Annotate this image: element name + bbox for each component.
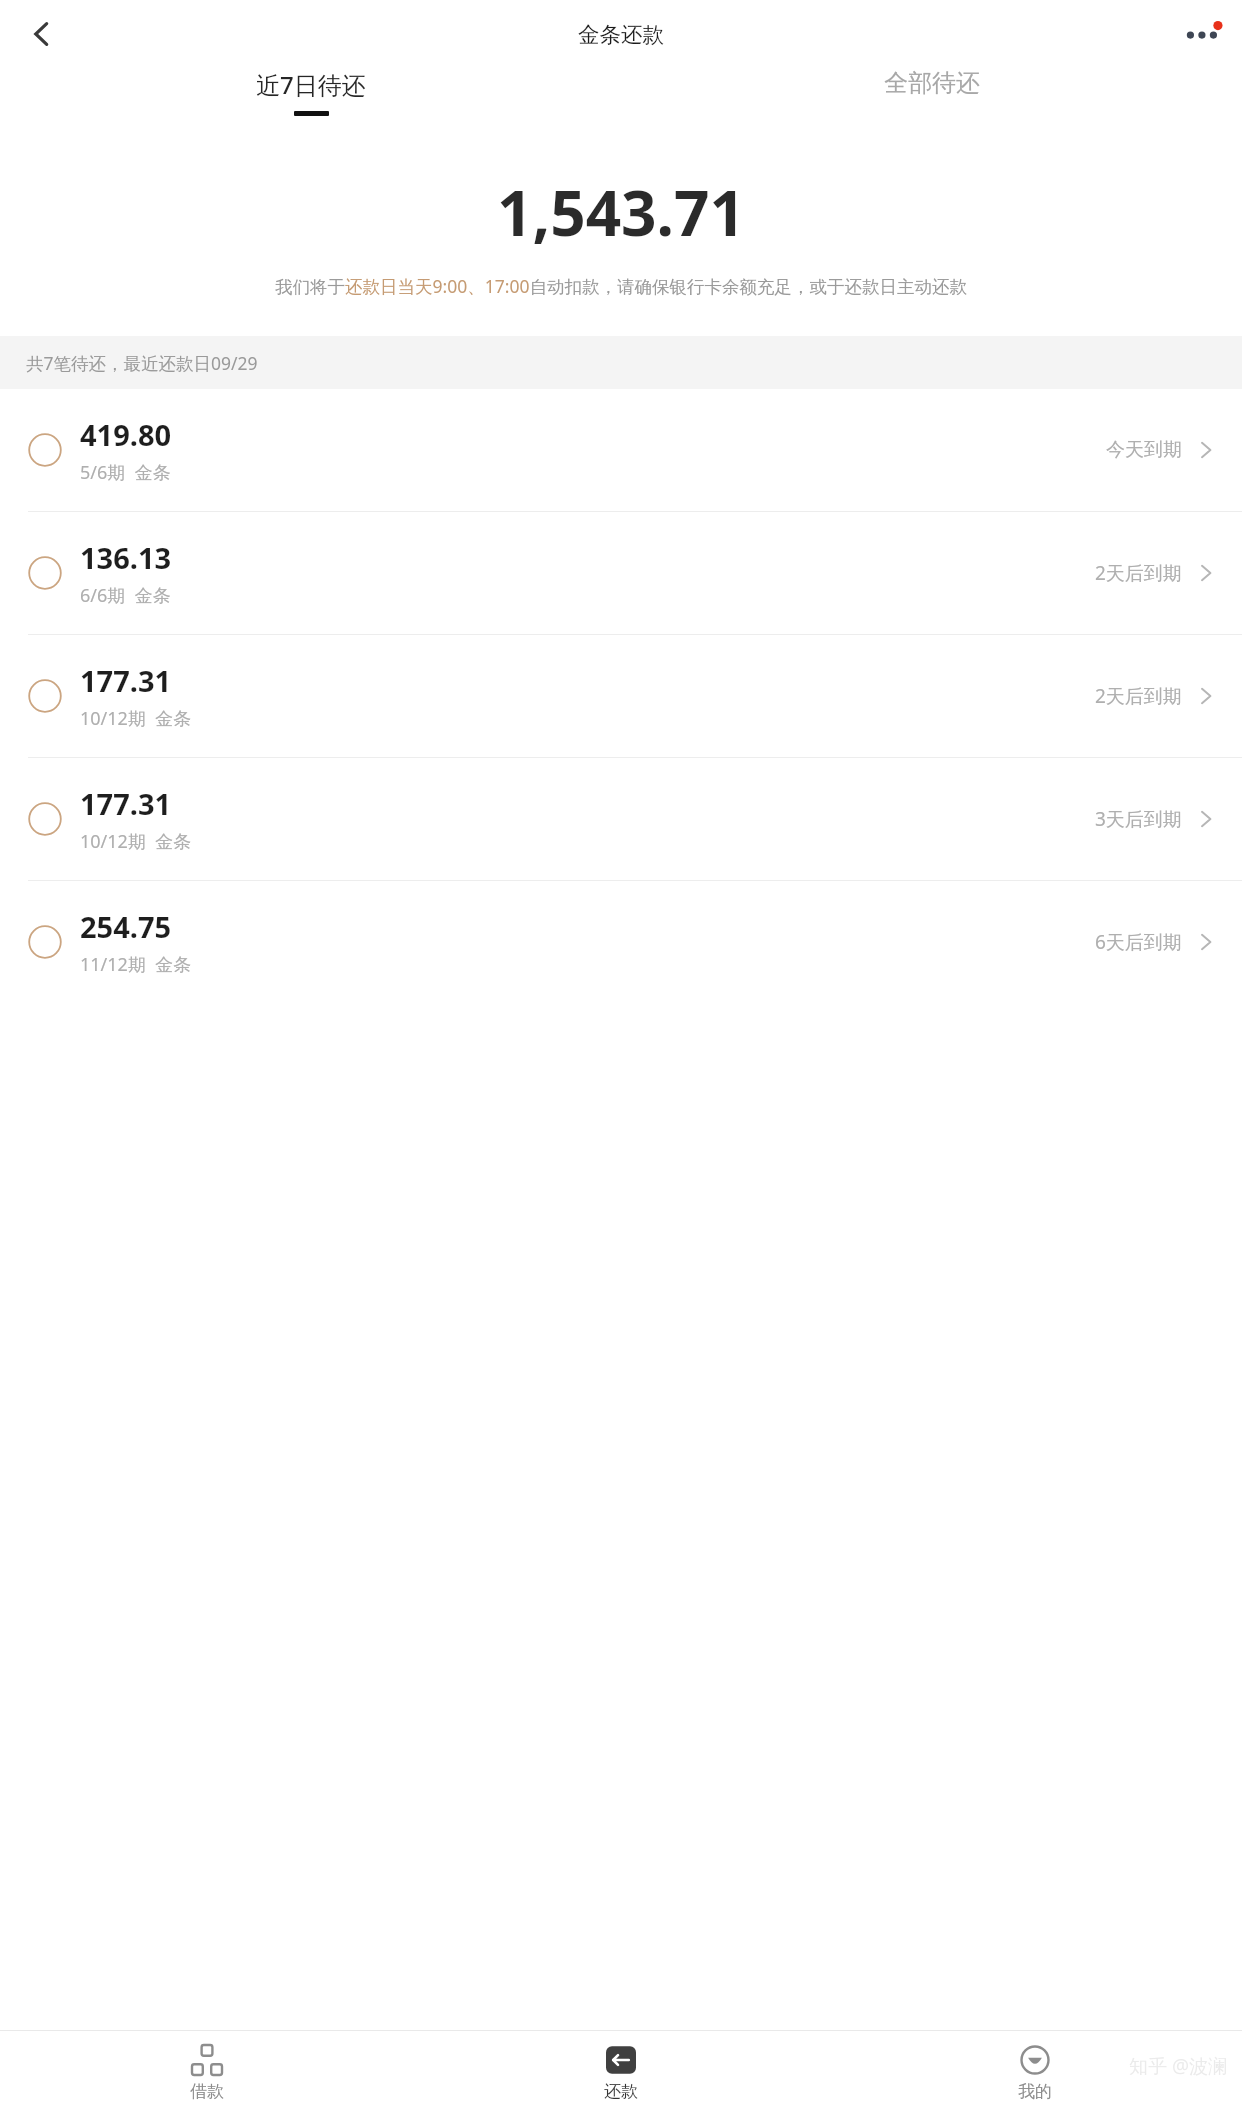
staticText: 借款 <box>190 2081 224 2102</box>
staticText: 177.31 <box>80 784 172 823</box>
staticText: 6/6期 金条 <box>80 583 171 608</box>
button[interactable]: 还款 <box>414 2045 828 2102</box>
staticText: 2天后到期 <box>1095 683 1182 709</box>
staticText: 还款 <box>604 2081 638 2102</box>
button[interactable]: 254.75 <box>0 881 1242 1003</box>
staticText: 11/12期 金条 <box>80 952 192 977</box>
staticText: 今天到期 <box>1106 438 1182 462</box>
staticText: 5/6期 金条 <box>80 460 171 485</box>
staticText: 共7笔待还，最近还款日09/29 <box>26 351 258 375</box>
staticText: 177.31 <box>80 661 172 700</box>
button[interactable]: 借款 <box>0 2045 414 2102</box>
staticText: 3天后到期 <box>1095 806 1182 832</box>
staticText: 1,543.71 <box>0 170 1242 254</box>
button[interactable]: Back <box>10 2 74 66</box>
staticText: 10/12期 金条 <box>80 829 192 854</box>
staticText: 近7日待还 <box>256 68 366 101</box>
button[interactable]: 136.13 <box>0 512 1242 634</box>
staticText: 2天后到期 <box>1095 560 1182 586</box>
staticText: 254.75 <box>80 907 172 946</box>
button[interactable]: 177.31 <box>0 635 1242 757</box>
button[interactable]: 177.31 <box>0 758 1242 880</box>
staticText: 419.80 <box>80 415 172 454</box>
button[interactable]: 近7日待还 <box>0 68 621 116</box>
button[interactable]: 全部待还 <box>621 68 1242 113</box>
staticText: 我的 <box>1018 2081 1052 2102</box>
staticText: 金条还款 <box>578 21 664 48</box>
staticText: 知乎 @波澜 <box>1129 2053 1228 2079</box>
button[interactable]: 419.80 <box>0 389 1242 511</box>
staticText: 我们将于还款日当天9:00、17:00自动扣款，请确保银行卡余额充足，或于还款日… <box>62 274 1180 298</box>
button[interactable]: More options <box>1172 2 1236 66</box>
staticText: 136.13 <box>80 538 172 577</box>
staticText: 10/12期 金条 <box>80 706 192 731</box>
button[interactable]: 我的 <box>828 2045 1242 2102</box>
staticText: 6天后到期 <box>1095 929 1182 955</box>
staticText: 全部待还 <box>884 68 980 98</box>
